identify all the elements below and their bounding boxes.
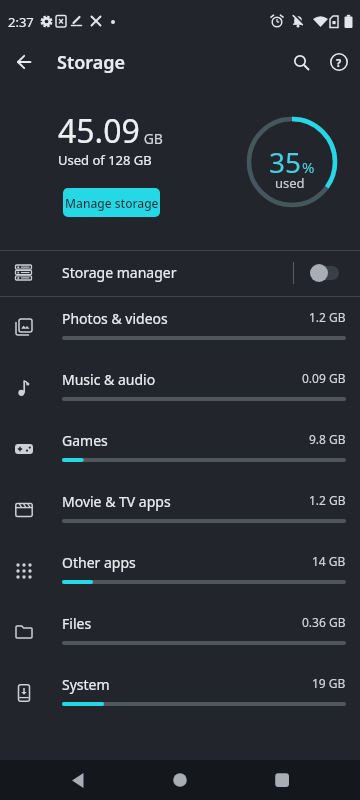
button[interactable]: Games (0, 419, 360, 480)
staticText: GB (140, 129, 163, 148)
staticText: 14 GB (312, 553, 346, 569)
staticText: Storage manager (62, 263, 177, 282)
staticText: Other apps (62, 553, 136, 572)
staticText: used (275, 174, 305, 192)
staticText: Used of 128 GB (58, 151, 152, 169)
staticText: Music & audio (62, 370, 156, 389)
button[interactable] (281, 42, 321, 82)
staticText: ? (336, 55, 342, 70)
staticText: 1.2 GB (309, 309, 346, 325)
staticText: Games (62, 431, 108, 450)
staticText: 19 GB (312, 675, 346, 691)
button[interactable] (305, 259, 349, 287)
staticText: Movie & TV apps (62, 492, 171, 511)
staticText: Manage storage (65, 195, 159, 211)
button[interactable]: Movie & TV apps (0, 480, 360, 541)
staticText: 9.8 GB (309, 431, 346, 447)
button[interactable]: Manage storage (63, 188, 160, 217)
staticText: Photos & videos (62, 309, 168, 328)
button[interactable] (156, 760, 204, 800)
staticText: 35 (269, 143, 302, 181)
button[interactable]: Files (0, 602, 360, 663)
staticText: Storage (57, 50, 126, 75)
button[interactable]: Music & audio (0, 358, 360, 419)
staticText: Files (62, 614, 92, 633)
button[interactable]: Storage manager (0, 251, 360, 296)
button[interactable] (258, 760, 306, 800)
staticText: % (302, 157, 315, 177)
button[interactable] (54, 760, 102, 800)
button[interactable]: Photos & videos (0, 297, 360, 358)
staticText: 0.09 GB (302, 370, 346, 386)
staticText: 1.2 GB (309, 492, 346, 508)
staticText: 2:37 (8, 13, 34, 31)
staticText: 0.36 GB (302, 614, 346, 630)
button[interactable]: Other apps (0, 541, 360, 602)
button[interactable]: ? (319, 42, 359, 82)
button[interactable]: System (0, 663, 360, 724)
staticText: System (62, 675, 110, 694)
staticText: 45.09 (58, 109, 140, 153)
button[interactable] (4, 42, 44, 82)
